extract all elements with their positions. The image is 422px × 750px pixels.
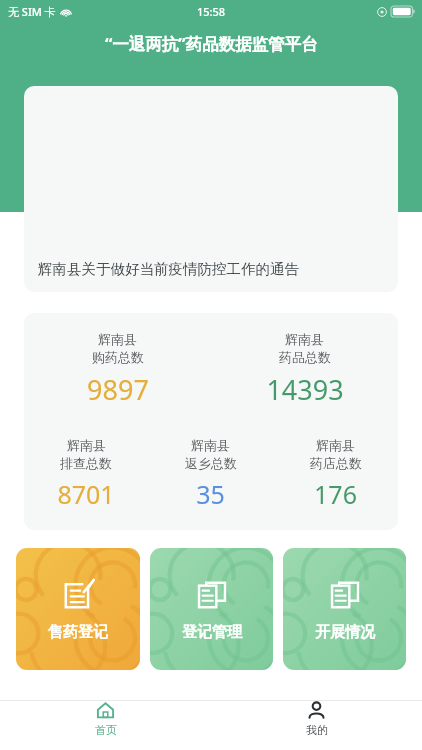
staticText: 176 — [314, 477, 357, 511]
staticText: 14393 — [266, 371, 344, 408]
staticText: 8701 — [57, 477, 115, 511]
staticText: 15:58 — [197, 4, 226, 19]
staticText: 药品总数 — [279, 349, 331, 365]
staticText: 售药登记 — [48, 623, 108, 642]
staticText: 辉南县 — [98, 331, 137, 347]
staticText: 辉南县 — [191, 437, 230, 453]
staticText: 购药总数 — [92, 349, 144, 365]
staticText: 辉南县 — [316, 437, 355, 453]
staticText: 返乡总数 — [185, 455, 237, 471]
staticText: 开展情况 — [315, 623, 375, 642]
staticText: 排查总数 — [60, 455, 112, 471]
button[interactable]: 开展情况 — [283, 548, 406, 670]
staticText: 无 SIM 卡 — [8, 4, 56, 19]
button[interactable]: 我的 — [211, 701, 422, 737]
staticText: 辉南县关于做好当前疫情防控工作的通告 — [38, 260, 299, 278]
button[interactable]: 首页 — [0, 701, 211, 737]
button[interactable]: 辉南县关于做好当前疫情防控工作的通告 — [24, 86, 398, 292]
staticText: 登记管理 — [182, 623, 242, 642]
button[interactable]: 辉南县 — [148, 437, 273, 511]
staticText: 首页 — [95, 723, 117, 737]
staticText: 辉南县 — [285, 331, 324, 347]
button[interactable]: 售药登记 — [16, 548, 140, 670]
button[interactable]: 辉南县 — [24, 437, 148, 511]
staticText: “一退两抗”药品数据监管平台 — [105, 32, 318, 55]
button[interactable]: 辉南县 — [24, 331, 211, 408]
button[interactable]: 登记管理 — [150, 548, 273, 670]
button[interactable]: 辉南县 — [211, 331, 398, 408]
staticText: 我的 — [306, 723, 328, 737]
staticText: 9897 — [87, 371, 149, 408]
staticText: 药店总数 — [310, 455, 362, 471]
staticText: 辉南县 — [67, 437, 106, 453]
staticText: 35 — [196, 477, 225, 511]
button[interactable]: 辉南县 — [273, 437, 398, 511]
